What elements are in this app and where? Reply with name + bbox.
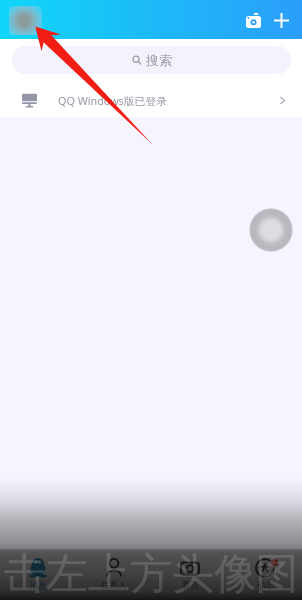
staticText: 击左上方头像图 <box>4 548 298 600</box>
button[interactable]: 消息 <box>0 549 76 600</box>
button[interactable]: Camera <box>240 7 266 33</box>
staticText: 消息 <box>30 580 47 591</box>
button[interactable]: Profile avatar <box>9 6 42 35</box>
button[interactable]: 联系人 <box>76 549 152 600</box>
staticText: 看点 <box>182 580 199 591</box>
staticText: QQ Windows版已登录 <box>58 93 167 108</box>
button[interactable]: QQ Windows版已登录 <box>0 85 302 115</box>
staticText: 联系人 <box>101 580 127 591</box>
staticText: 动态 <box>257 580 274 591</box>
staticText: 搜索 <box>146 52 172 68</box>
button[interactable]: 看点 <box>152 549 228 600</box>
button[interactable]: Add <box>268 7 294 33</box>
button[interactable]: 搜索 <box>12 46 291 74</box>
button[interactable]: 动态 <box>228 549 302 600</box>
button[interactable]: Floating assistant <box>249 208 293 252</box>
